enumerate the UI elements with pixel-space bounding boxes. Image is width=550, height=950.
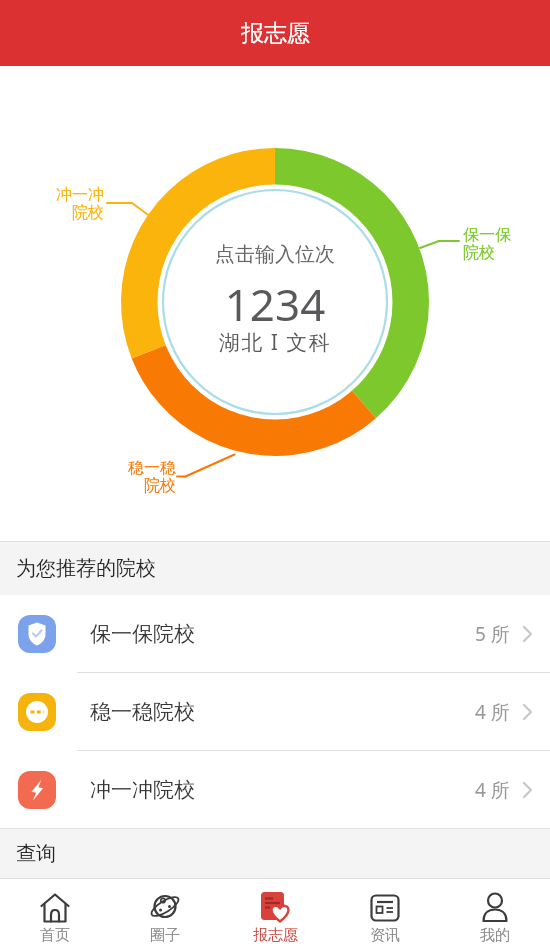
staticText: 圈子	[150, 926, 180, 945]
staticText: 稳一稳院校	[90, 699, 195, 725]
button[interactable]: 圈子	[110, 879, 220, 950]
staticText: 首页	[40, 926, 70, 945]
staticText: 稳一稳 院校	[112, 458, 176, 495]
staticText: 4 所	[475, 699, 510, 725]
staticText: 保一保院校	[90, 621, 195, 647]
button[interactable]: 首页	[0, 879, 110, 950]
staticText: 1234	[0, 274, 550, 334]
staticText: 5 所	[475, 621, 510, 647]
button[interactable]: 报志愿	[220, 879, 330, 950]
staticText: 查询	[16, 841, 56, 866]
staticText: 报志愿	[253, 926, 298, 945]
staticText: 我的	[480, 926, 510, 945]
button[interactable]: 冲一冲院校	[0, 751, 550, 828]
staticText: 冲一冲院校	[90, 777, 195, 803]
staticText: 报志愿	[241, 19, 310, 48]
staticText: 4 所	[475, 777, 510, 803]
button[interactable]: 稳一稳院校	[0, 673, 550, 750]
staticText: 点击输入位次	[0, 242, 550, 267]
staticText: 保一保 院校	[463, 225, 511, 262]
staticText: 资讯	[370, 926, 400, 945]
button[interactable]: 保一保院校	[0, 595, 550, 672]
staticText: 为您推荐的院校	[16, 556, 156, 581]
staticText: 冲一冲 院校	[40, 185, 104, 222]
button[interactable]: 点击输入位次	[0, 66, 550, 541]
staticText: 湖北 I 文科	[0, 328, 550, 357]
button[interactable]: 资讯	[330, 879, 440, 950]
button[interactable]: 报志愿	[0, 0, 550, 66]
button[interactable]: 查询	[0, 829, 550, 878]
button[interactable]: 我的	[440, 879, 550, 950]
